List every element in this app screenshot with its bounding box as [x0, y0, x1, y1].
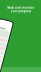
staticText: Track and monitor: [7, 6, 34, 9]
staticText: your progress: [10, 9, 30, 13]
